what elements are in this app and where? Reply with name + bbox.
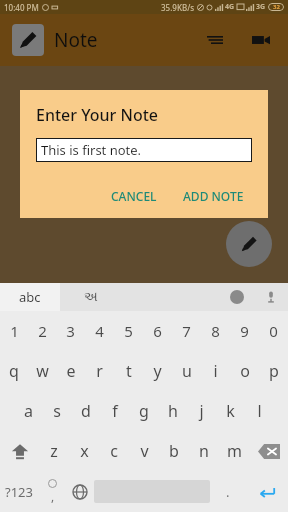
button[interactable]: અ [60, 283, 122, 311]
staticText: z [50, 440, 58, 462]
button[interactable]: abc [0, 283, 60, 311]
button[interactable]: This is first note. [36, 138, 252, 162]
button[interactable]: u [172, 351, 201, 391]
button[interactable]: 0 [259, 311, 288, 351]
button[interactable]: l [245, 391, 274, 431]
staticText: i [213, 360, 218, 382]
staticText: x [80, 440, 89, 462]
staticText: o [240, 360, 250, 382]
staticText: a [24, 400, 33, 422]
button[interactable]: Voice input [254, 283, 288, 311]
button[interactable]: v [129, 431, 159, 471]
button[interactable]: Emoji and comma [38, 471, 66, 512]
button[interactable]: Shift [0, 431, 39, 471]
staticText: 3 [66, 321, 75, 341]
staticText: 4 [95, 321, 104, 341]
staticText: 6 [153, 321, 162, 341]
staticText: j [199, 400, 204, 422]
button[interactable]: Backspace [249, 431, 288, 471]
button[interactable]: 2 [28, 311, 56, 351]
button[interactable]: k [216, 391, 245, 431]
button[interactable]: . [210, 471, 246, 512]
button[interactable]: 1 [0, 311, 28, 351]
button[interactable]: Sort [200, 25, 230, 55]
button[interactable]: g [129, 391, 158, 431]
staticText: d [81, 400, 91, 422]
button[interactable]: m [219, 431, 249, 471]
staticText: h [168, 400, 178, 422]
staticText: CANCEL [111, 188, 157, 204]
button[interactable]: x [69, 431, 99, 471]
staticText: 2 [38, 321, 47, 341]
staticText: 5 [124, 321, 133, 341]
button[interactable]: 9 [230, 311, 259, 351]
button[interactable]: c [99, 431, 129, 471]
staticText: ADD NOTE [183, 188, 244, 204]
button[interactable]: z [39, 431, 69, 471]
staticText: 4G [225, 2, 235, 12]
staticText: q [9, 360, 19, 382]
button[interactable]: r [85, 351, 114, 391]
staticText: r [96, 360, 103, 382]
button[interactable]: o [230, 351, 259, 391]
staticText: 32 [273, 3, 280, 11]
staticText: p [269, 360, 279, 382]
button[interactable]: j [187, 391, 216, 431]
button[interactable]: Change language [66, 471, 94, 512]
staticText: Enter Your Note [36, 104, 158, 126]
button[interactable]: d [71, 391, 100, 431]
button[interactable]: 3 [56, 311, 85, 351]
button[interactable]: ?123 [0, 471, 38, 512]
staticText: 3G [256, 2, 266, 12]
button[interactable]: 6 [143, 311, 172, 351]
button[interactable]: s [42, 391, 71, 431]
staticText: . [226, 483, 230, 501]
staticText: t [126, 360, 132, 382]
button[interactable]: y [143, 351, 172, 391]
button[interactable]: f [100, 391, 129, 431]
staticText: s [53, 400, 61, 422]
button[interactable]: n [189, 431, 219, 471]
staticText: , [51, 488, 55, 504]
staticText: This is first note. [41, 141, 142, 159]
button[interactable]: t [114, 351, 143, 391]
staticText: w [36, 360, 49, 382]
staticText: n [199, 440, 209, 462]
button[interactable]: h [158, 391, 187, 431]
staticText: g [139, 400, 149, 422]
staticText: 1 [10, 321, 19, 341]
button[interactable]: w [28, 351, 56, 391]
button[interactable]: i [201, 351, 230, 391]
button[interactable]: Enter [246, 471, 288, 512]
button[interactable]: q [0, 351, 28, 391]
staticText: 35.9KB/s [161, 2, 195, 13]
staticText: ?123 [5, 483, 33, 501]
staticText: e [66, 360, 76, 382]
button[interactable]: 8 [201, 311, 230, 351]
staticText: c [110, 440, 118, 462]
staticText: 9 [240, 321, 249, 341]
button[interactable]: 4 [85, 311, 114, 351]
staticText: abc [19, 288, 41, 306]
staticText: અ [84, 291, 98, 304]
button[interactable]: Add note [226, 221, 272, 267]
staticText: v [140, 440, 149, 462]
button[interactable]: 7 [172, 311, 201, 351]
button[interactable]: 5 [114, 311, 143, 351]
staticText: 10:40 PM [4, 2, 39, 13]
button[interactable]: ADD NOTE [175, 184, 252, 208]
staticText: l [257, 400, 262, 422]
staticText: f [112, 400, 118, 422]
button[interactable]: a [14, 391, 42, 431]
staticText: 7 [182, 321, 191, 341]
button[interactable]: e [56, 351, 85, 391]
button[interactable]: Help [220, 283, 254, 311]
staticText: b [169, 440, 179, 462]
button[interactable]: b [159, 431, 189, 471]
button[interactable]: CANCEL [103, 184, 165, 208]
staticText: k [226, 400, 235, 422]
button[interactable]: Video [246, 25, 276, 55]
staticText: u [182, 360, 192, 382]
button[interactable]: p [259, 351, 288, 391]
